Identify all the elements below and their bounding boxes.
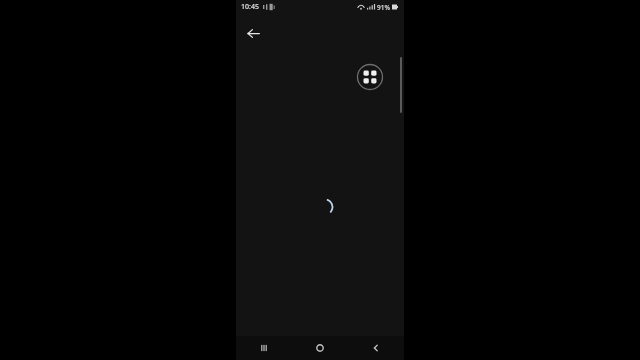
- button[interactable]: Back: [240, 20, 266, 46]
- button[interactable]: Home: [292, 336, 348, 360]
- staticText: 91%: [377, 3, 390, 12]
- button[interactable]: Recent apps: [236, 336, 292, 360]
- button[interactable]: Back: [348, 336, 404, 360]
- staticText: 10:45: [241, 2, 259, 12]
- button[interactable]: Apps grid: [356, 63, 384, 91]
